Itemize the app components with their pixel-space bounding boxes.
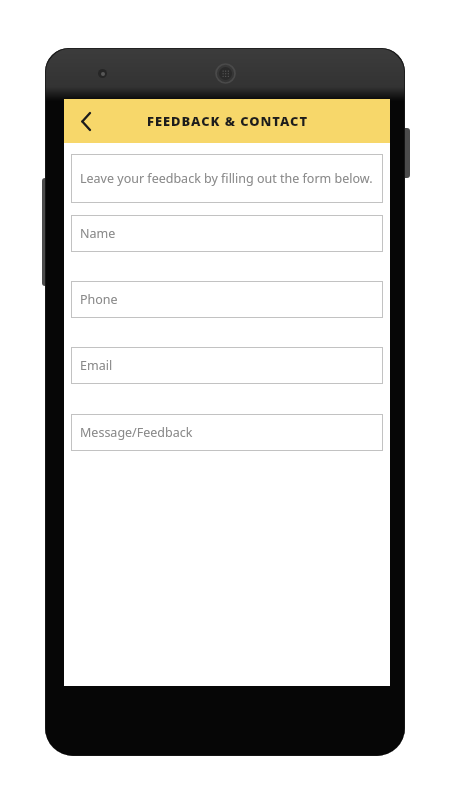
- button[interactable]: Back: [64, 99, 108, 143]
- button[interactable]: Email: [71, 347, 383, 384]
- button[interactable]: Phone: [71, 281, 383, 318]
- staticText: Email: [80, 357, 113, 374]
- staticText: Message/Feedback: [80, 424, 193, 441]
- staticText: Name: [80, 225, 116, 242]
- staticText: FEEDBACK & CONTACT: [147, 112, 308, 130]
- button[interactable]: Message/Feedback: [71, 414, 383, 451]
- button[interactable]: Leave your feedback by filling out the f…: [71, 154, 383, 203]
- button[interactable]: Name: [71, 215, 383, 252]
- staticText: Phone: [80, 291, 118, 308]
- staticText: Leave your feedback by filling out the f…: [80, 170, 373, 187]
